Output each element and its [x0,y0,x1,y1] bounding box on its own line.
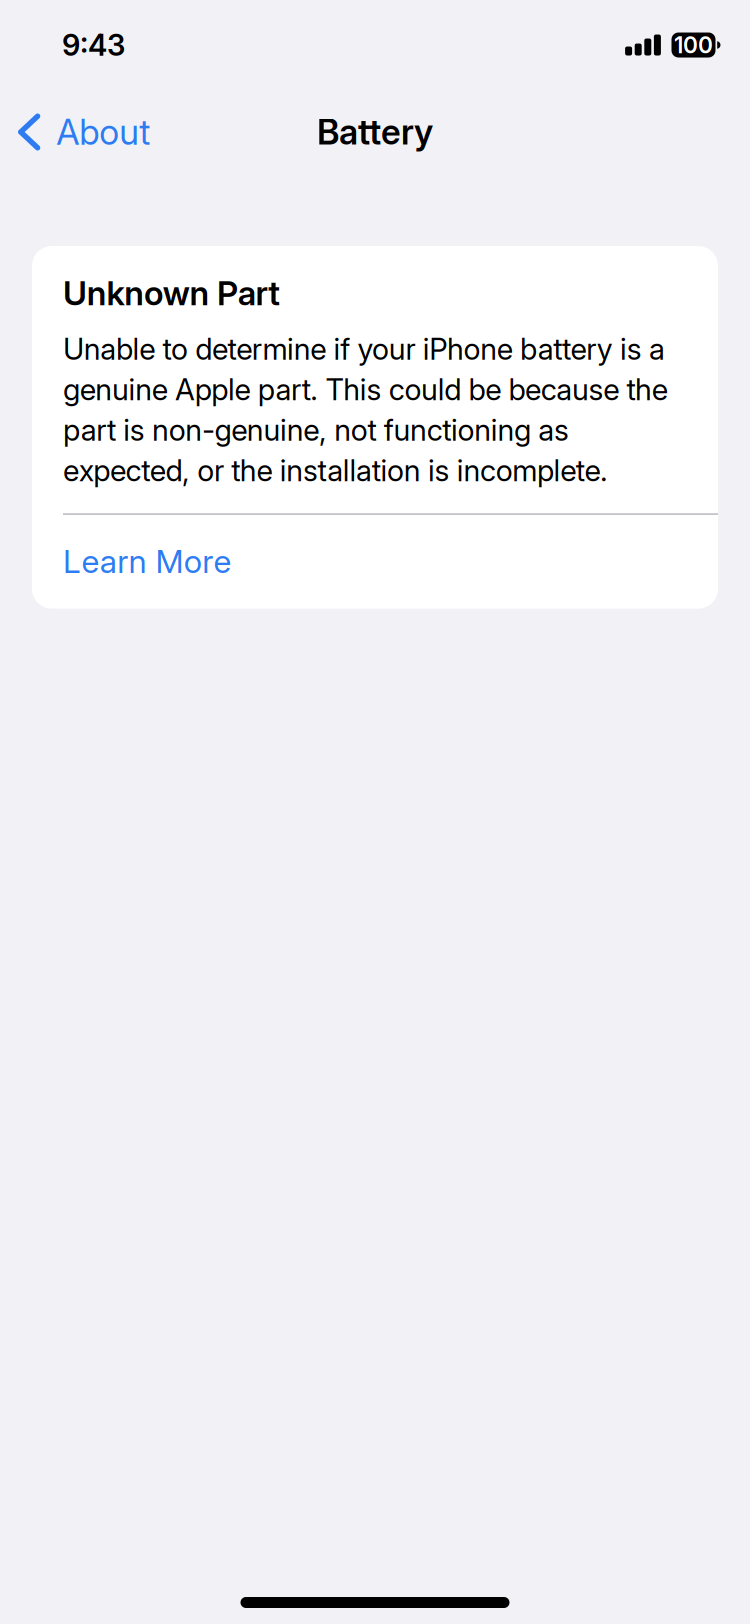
staticText: Unable to determine if your iPhone batte… [63,331,668,488]
staticText: 9:43 [62,27,125,63]
staticText: Unknown Part [63,273,280,313]
staticText: Battery [317,111,433,153]
staticText: About [56,111,150,153]
staticText: 100 [674,31,713,59]
button[interactable]: Learn More [32,515,718,609]
button[interactable]: About [0,101,164,163]
staticText: Learn More [63,542,232,581]
